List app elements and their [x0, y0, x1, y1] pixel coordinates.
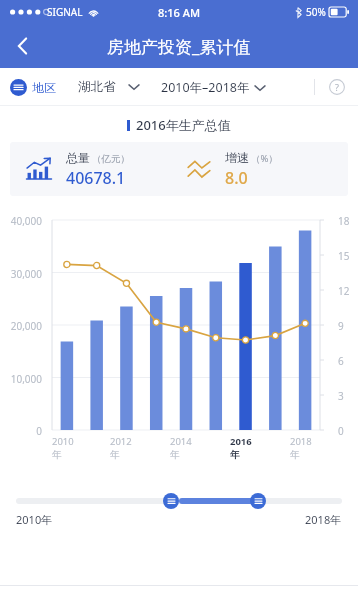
staticText: 2016年	[230, 435, 260, 460]
button[interactable]: 增速	[179, 142, 348, 196]
staticText: 总量	[66, 150, 90, 165]
staticText: 20,000	[0, 319, 42, 333]
staticText: 40678.1	[66, 167, 126, 189]
staticText: 18	[338, 214, 358, 228]
button[interactable]	[16, 498, 342, 504]
staticText: 6	[338, 354, 358, 368]
button[interactable]: 地区	[10, 79, 56, 96]
staticText: 2016年生产总值	[136, 116, 231, 134]
button[interactable]: 湖北省	[78, 79, 139, 95]
staticText: 8:16 AM	[158, 5, 201, 20]
staticText: 3	[338, 389, 358, 403]
staticText: 8.0	[225, 167, 248, 189]
staticText: 2018年	[290, 435, 320, 460]
button[interactable]: Help	[326, 76, 348, 98]
staticText: 12	[338, 284, 358, 298]
staticText: （%）	[251, 152, 278, 165]
button[interactable]	[179, 498, 257, 504]
staticText: 40,000	[0, 214, 42, 228]
button[interactable]: Range handle	[250, 493, 266, 509]
staticText: 增速	[225, 150, 249, 165]
staticText: 2018年	[305, 512, 342, 527]
staticText: ?	[335, 81, 339, 93]
staticText: 2010年–2018年	[161, 79, 250, 96]
button[interactable]: Range handle	[163, 493, 179, 509]
staticText: 地区	[32, 80, 56, 95]
staticText: 2012年	[110, 435, 140, 460]
staticText: 房地产投资_累计值	[107, 35, 251, 58]
staticText: 2010年	[16, 512, 53, 527]
staticText: 50%	[306, 5, 326, 19]
staticText: 10,000	[0, 372, 42, 386]
staticText: 30,000	[0, 267, 42, 281]
staticText: 2014年	[170, 435, 200, 460]
staticText: SIGNAL	[47, 5, 83, 19]
staticText: 0	[0, 424, 42, 438]
button[interactable]: 总量	[10, 142, 179, 196]
staticText: 0	[338, 424, 358, 438]
staticText: 湖北省	[78, 79, 116, 95]
button[interactable]: 2010年–2018年	[161, 79, 265, 96]
staticText: （亿元）	[92, 153, 130, 165]
staticText: 2010年	[52, 435, 81, 460]
button[interactable]: Back	[0, 24, 44, 68]
staticText: 15	[338, 249, 358, 263]
staticText: 9	[338, 319, 358, 333]
